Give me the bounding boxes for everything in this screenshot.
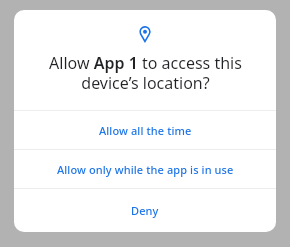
staticText: Allow all the time <box>99 123 192 138</box>
staticText: Deny <box>131 203 159 218</box>
button[interactable]: Allow all the time <box>14 111 276 149</box>
button[interactable]: Deny <box>14 189 276 232</box>
button[interactable]: Allow only while the app is in use <box>14 150 276 188</box>
staticText: Allow App 1 to access this device’s loca… <box>49 52 242 93</box>
staticText: Allow only while the app is in use <box>57 162 234 177</box>
